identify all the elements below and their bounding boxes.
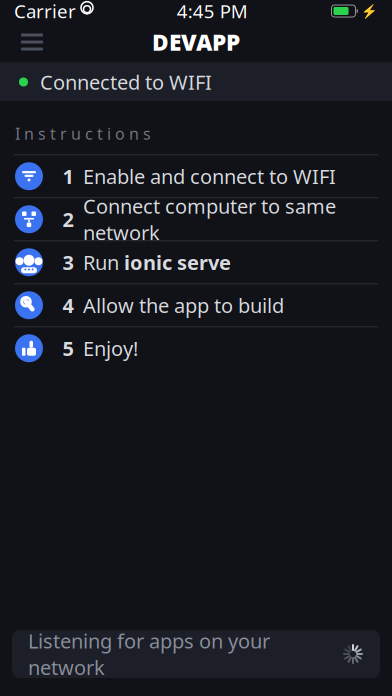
button[interactable]: Menu — [10, 20, 54, 64]
staticText: I n s t r u c t i o n s — [15, 123, 151, 144]
staticText: Enjoy! — [83, 335, 138, 362]
staticText: 3 — [62, 249, 73, 276]
staticText: Allow the app to build — [83, 292, 284, 319]
button[interactable]: 5 — [0, 327, 392, 370]
staticText: Run — [83, 249, 124, 276]
staticText: 5 — [62, 335, 73, 362]
staticText: 1 — [62, 163, 73, 190]
button[interactable]: 2 — [0, 198, 392, 241]
button[interactable]: 3 — [0, 241, 392, 284]
staticText: ionic serve — [124, 249, 231, 276]
staticText: Listening for apps on your network — [28, 627, 270, 680]
button[interactable]: 4 — [0, 284, 392, 327]
staticText: 4:45 PM — [177, 0, 248, 23]
staticText: 2 — [62, 206, 73, 233]
button[interactable]: Listening for apps on your network — [12, 630, 380, 678]
staticText: Connect computer to same network — [83, 193, 336, 246]
staticText: Enable and connect to WIFI — [83, 163, 336, 190]
staticText: Carrier — [14, 0, 76, 23]
staticText: ⚡ — [361, 3, 378, 19]
staticText: Connected to WIFI — [40, 69, 212, 95]
button[interactable]: 1 — [0, 155, 392, 198]
staticText: DEVAPP — [152, 27, 240, 57]
staticText: 4 — [62, 292, 73, 319]
